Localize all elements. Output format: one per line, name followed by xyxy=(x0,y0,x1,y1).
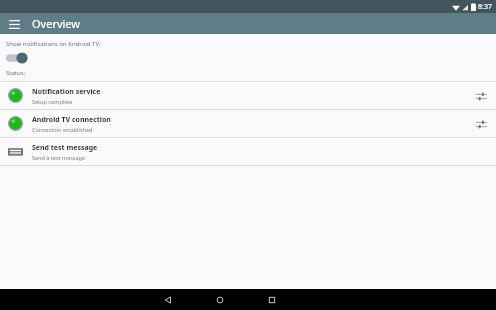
button[interactable]: Show notifications on Android TV toggle xyxy=(6,51,32,65)
staticText: Connection established xyxy=(32,126,93,133)
staticText: Notification service xyxy=(32,87,101,97)
button[interactable]: Settings for Notification service xyxy=(472,87,490,105)
button[interactable]: Home xyxy=(209,289,231,310)
button[interactable]: Notification service xyxy=(0,82,496,109)
staticText: Show notifications on Android TV: xyxy=(6,40,101,48)
staticText: Send test message xyxy=(32,143,98,153)
button[interactable]: Recent apps xyxy=(261,289,283,310)
button[interactable]: Open navigation drawer xyxy=(6,16,22,32)
staticText: Android TV connection xyxy=(32,115,111,125)
staticText: 8:37 xyxy=(478,2,492,12)
button[interactable]: Send test message xyxy=(0,138,496,165)
staticText: Setup complete xyxy=(32,98,73,105)
button[interactable]: Settings for Android TV connection xyxy=(472,115,490,133)
staticText: Overview xyxy=(32,16,80,31)
button[interactable]: Android TV connection xyxy=(0,110,496,137)
button[interactable]: Back xyxy=(157,289,179,310)
staticText: Send a test message xyxy=(32,154,86,161)
staticText: Status: xyxy=(6,69,26,77)
